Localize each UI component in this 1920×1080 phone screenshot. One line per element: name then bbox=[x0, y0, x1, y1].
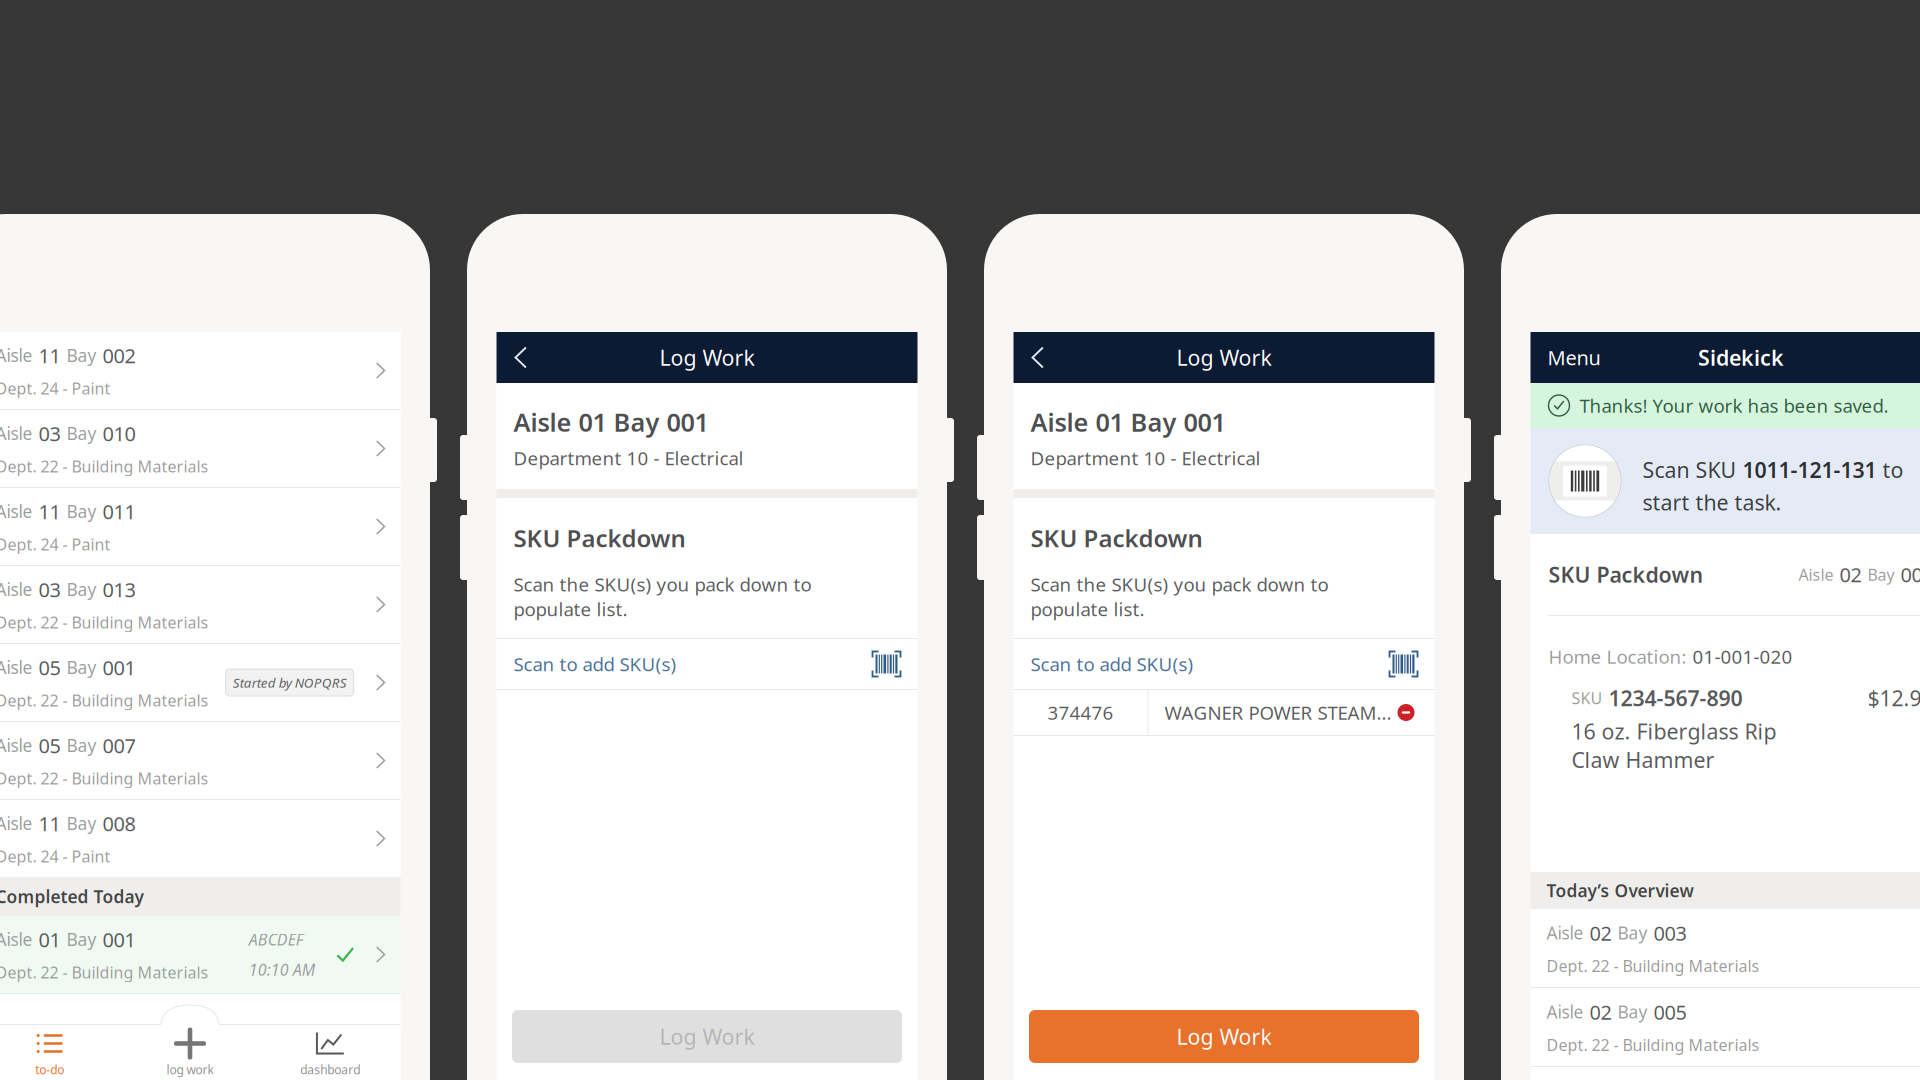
staticText: Aisle bbox=[0, 734, 32, 757]
staticText: Aisle bbox=[1798, 564, 1833, 585]
staticText: Aisle bbox=[0, 422, 32, 445]
staticText: 10:10 AM bbox=[249, 959, 315, 980]
staticText: Dept. 24 - Paint bbox=[0, 378, 110, 399]
staticText: Sidekick bbox=[1698, 343, 1784, 372]
staticText: Today’s Overview bbox=[1546, 879, 1693, 902]
staticText: Aisle bbox=[0, 578, 32, 601]
button[interactable]: Scan to add SKU(s) bbox=[1013, 639, 1434, 689]
staticText: 01 bbox=[38, 926, 60, 953]
staticText: 05 bbox=[38, 654, 60, 681]
staticText: 004 bbox=[1900, 561, 1920, 588]
staticText: Dept. 22 - Building Materials bbox=[0, 768, 208, 789]
staticText: Bay bbox=[66, 928, 96, 951]
staticText: SKU Packdown bbox=[1548, 560, 1703, 589]
staticText: 011 bbox=[102, 498, 135, 525]
staticText: WAGNER POWER STEAM... bbox=[1164, 700, 1391, 725]
staticText: 02 bbox=[1839, 561, 1861, 588]
staticText: Claw Hammer bbox=[1571, 745, 1714, 774]
staticText: Scan to add SKU(s) bbox=[1030, 652, 1193, 676]
staticText: Department 10 - Electrical bbox=[513, 446, 743, 470]
button[interactable]: dashboard bbox=[260, 1025, 400, 1080]
staticText: Scan the SKU(s) you pack down to bbox=[513, 572, 811, 597]
button[interactable]: Aisle bbox=[0, 722, 400, 799]
staticText: 1234-567-890 bbox=[1608, 684, 1742, 712]
button[interactable]: log work bbox=[120, 1025, 260, 1080]
button[interactable]: Aisle bbox=[0, 566, 400, 643]
staticText: Scan the SKU(s) you pack down to bbox=[1030, 572, 1328, 597]
button[interactable]: Aisle bbox=[0, 488, 400, 565]
staticText: 005 bbox=[1653, 999, 1686, 1025]
staticText: Bay bbox=[1867, 564, 1894, 585]
staticText: 01-001-020 bbox=[1692, 644, 1792, 669]
button[interactable]: Back bbox=[1013, 332, 1062, 383]
staticText: 11 bbox=[38, 810, 60, 837]
button[interactable]: Log Work bbox=[512, 1010, 902, 1063]
staticText: Bay bbox=[66, 344, 96, 367]
staticText: SKU Packdown bbox=[1030, 522, 1202, 554]
staticText: Scan SKU bbox=[1642, 456, 1742, 484]
staticText: Aisle bbox=[0, 656, 32, 679]
staticText: Dept. 22 - Building Materials bbox=[0, 612, 208, 633]
staticText: SKU bbox=[1571, 687, 1602, 708]
staticText: log work bbox=[166, 1061, 213, 1077]
staticText: 16 oz. Fiberglass Rip bbox=[1571, 717, 1776, 745]
staticText: Scan to add SKU(s) bbox=[513, 652, 676, 676]
button[interactable]: Back bbox=[496, 332, 545, 383]
staticText: Aisle bbox=[1546, 921, 1583, 944]
button[interactable]: Aisle bbox=[0, 410, 400, 487]
staticText: to-do bbox=[35, 1061, 64, 1077]
staticText: Aisle bbox=[0, 812, 32, 835]
button[interactable]: Aisle bbox=[0, 332, 400, 409]
staticText: Aisle bbox=[0, 500, 32, 523]
button[interactable]: Aisle bbox=[0, 800, 400, 877]
staticText: $12.98 bbox=[1867, 684, 1920, 712]
staticText: to bbox=[1876, 456, 1903, 484]
staticText: Log Work bbox=[1176, 343, 1271, 372]
staticText: 374476 bbox=[1047, 700, 1113, 725]
staticText: dashboard bbox=[300, 1061, 360, 1077]
staticText: Dept. 22 - Building Materials bbox=[0, 962, 208, 983]
staticText: 1011-121-131 bbox=[1742, 456, 1876, 484]
button[interactable]: Scan to add SKU(s) bbox=[496, 639, 917, 689]
button[interactable]: Aisle bbox=[1530, 909, 1920, 987]
staticText: Bay bbox=[66, 422, 96, 445]
staticText: Dept. 22 - Building Materials bbox=[1546, 955, 1759, 976]
staticText: Log Work bbox=[659, 1022, 754, 1051]
staticText: Thanks! Your work has been saved. bbox=[1579, 393, 1888, 418]
staticText: Started by NOPQRS bbox=[233, 674, 347, 691]
staticText: 03 bbox=[38, 576, 60, 603]
button[interactable]: to-do bbox=[0, 1025, 120, 1080]
staticText: Completed Today bbox=[0, 885, 143, 908]
staticText: ABCDEF bbox=[249, 929, 304, 950]
staticText: 001 bbox=[102, 926, 135, 953]
button[interactable]: Menu bbox=[1530, 332, 1617, 383]
staticText: Bay bbox=[66, 656, 96, 679]
staticText: 02 bbox=[1589, 920, 1611, 946]
staticText: 11 bbox=[38, 342, 60, 369]
staticText: 11 bbox=[38, 498, 60, 525]
staticText: Dept. 24 - Paint bbox=[0, 534, 110, 555]
staticText: start the task. bbox=[1642, 488, 1781, 516]
staticText: Dept. 24 - Paint bbox=[0, 846, 110, 867]
staticText: 013 bbox=[102, 576, 135, 603]
staticText: 001 bbox=[102, 654, 135, 681]
staticText: Bay bbox=[66, 578, 96, 601]
staticText: 010 bbox=[102, 420, 135, 447]
staticText: Bay bbox=[1617, 1000, 1647, 1023]
staticText: SKU Packdown bbox=[513, 522, 685, 554]
staticText: Bay bbox=[66, 500, 96, 523]
staticText: Home Location: bbox=[1548, 644, 1686, 669]
staticText: populate list. bbox=[513, 597, 627, 621]
staticText: Dept. 22 - Building Materials bbox=[0, 456, 208, 477]
staticText: 007 bbox=[102, 732, 135, 759]
staticText: Bay bbox=[1617, 921, 1647, 944]
staticText: Aisle bbox=[0, 928, 32, 951]
button[interactable]: Aisle bbox=[0, 644, 400, 721]
button[interactable]: Aisle bbox=[0, 916, 400, 993]
button[interactable]: Aisle bbox=[1530, 988, 1920, 1066]
staticText: populate list. bbox=[1030, 597, 1144, 621]
staticText: 05 bbox=[38, 732, 60, 759]
button[interactable]: Log Work bbox=[1029, 1010, 1419, 1063]
staticText: Aisle bbox=[0, 344, 32, 367]
staticText: Bay bbox=[66, 812, 96, 835]
